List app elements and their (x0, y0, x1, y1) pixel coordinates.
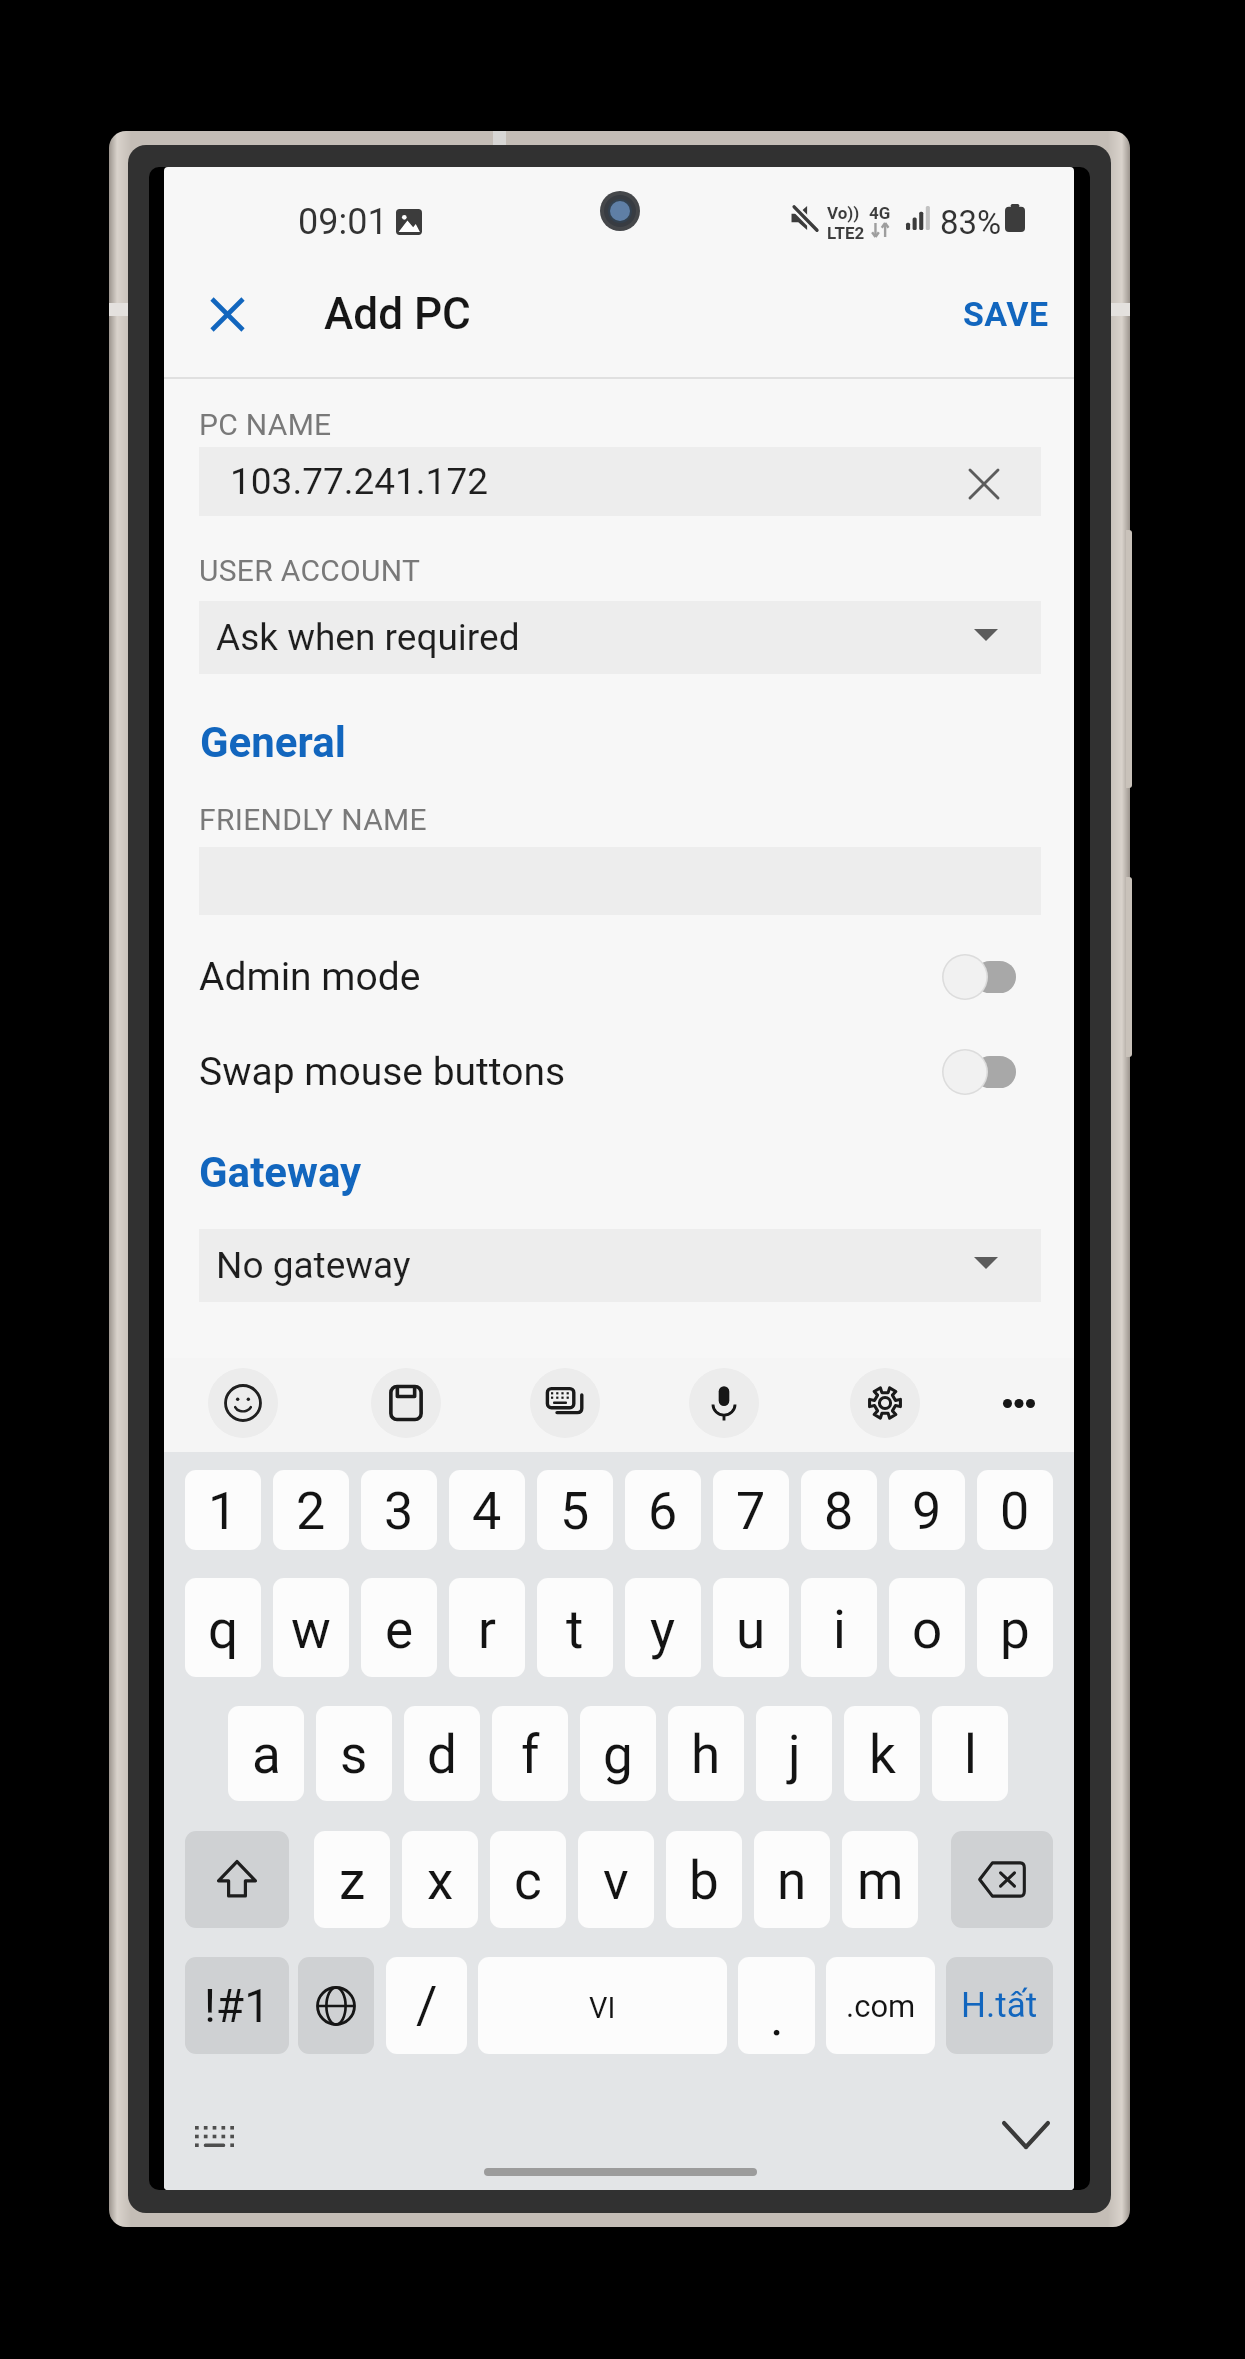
button[interactable]: j (756, 1706, 832, 1801)
button[interactable]: Swap mouse buttons (164, 1024, 1074, 1119)
button[interactable]: !#1 (185, 1957, 289, 2054)
button[interactable]: 6 (625, 1470, 701, 1550)
button[interactable]: e (361, 1578, 437, 1677)
staticText: j (788, 1724, 801, 1786)
button[interactable]: SAVE (943, 278, 1069, 350)
staticText: y (650, 1599, 676, 1661)
button[interactable]: x (402, 1831, 478, 1928)
staticText: 9 (912, 1481, 942, 1542)
staticText: !#1 (204, 1979, 271, 2033)
button[interactable]: .com (826, 1957, 935, 2054)
button[interactable]: 3 (361, 1470, 437, 1550)
staticText: m (857, 1850, 904, 1912)
button[interactable]: No gateway (199, 1229, 1041, 1302)
button[interactable]: u (713, 1578, 789, 1677)
button[interactable]: Keyboard modes (530, 1368, 600, 1438)
button[interactable]: l (932, 1706, 1008, 1801)
button[interactable]: Power (1126, 877, 1132, 1057)
button[interactable]: b (666, 1831, 742, 1928)
staticText: No gateway (216, 1244, 411, 1287)
staticText: e (385, 1599, 414, 1661)
staticText: 09:01 (298, 201, 388, 243)
button[interactable]: h (668, 1706, 744, 1801)
staticText: d (427, 1724, 457, 1786)
staticText: r (478, 1599, 496, 1661)
button[interactable]: 9 (889, 1470, 965, 1550)
button[interactable]: Backspace (951, 1831, 1053, 1928)
staticText: 3 (384, 1481, 414, 1542)
button[interactable]: r (449, 1578, 525, 1677)
staticText: 0 (1000, 1481, 1030, 1542)
staticText: FRIENDLY NAME (199, 802, 427, 837)
button[interactable]: 5 (537, 1470, 613, 1550)
button[interactable]: Close (191, 278, 263, 350)
button[interactable]: H.tất (946, 1957, 1053, 2054)
staticText: 83% (940, 203, 1002, 242)
button[interactable]: m (842, 1831, 918, 1928)
button[interactable]: VI (478, 1957, 727, 2054)
button[interactable]: k (844, 1706, 920, 1801)
button[interactable]: Clear text (953, 453, 1015, 515)
staticText: Gateway (199, 1148, 362, 1197)
button[interactable]: Shift (185, 1831, 289, 1928)
button[interactable]: o (889, 1578, 965, 1677)
staticText: t (566, 1599, 584, 1661)
button[interactable]: f (492, 1706, 568, 1801)
staticText: i (833, 1599, 846, 1661)
staticText: 2 (296, 1481, 326, 1542)
button[interactable]: c (490, 1831, 566, 1928)
button[interactable]: q (185, 1578, 261, 1677)
button[interactable]: g (580, 1706, 656, 1801)
button[interactable]: Volume (1126, 530, 1132, 788)
staticText: k (869, 1724, 896, 1786)
staticText: USER ACCOUNT (199, 553, 421, 588)
button[interactable]: Clipboard (371, 1368, 441, 1438)
button[interactable]: 2 (273, 1470, 349, 1550)
button[interactable]: v (578, 1831, 654, 1928)
button[interactable]: 103.77.241.172 (199, 447, 1041, 516)
staticText: Add PC (324, 288, 471, 340)
button[interactable]: s (316, 1706, 392, 1801)
staticText: z (339, 1850, 366, 1912)
staticText: b (689, 1850, 719, 1912)
staticText: 4G (869, 203, 891, 223)
staticText: u (736, 1599, 766, 1661)
staticText: Vo)) (827, 203, 860, 223)
button[interactable]: y (625, 1578, 701, 1677)
staticText: 1 (208, 1481, 238, 1542)
button[interactable]: d (404, 1706, 480, 1801)
button[interactable]: Ask when required (199, 601, 1041, 674)
button[interactable]: . (738, 1957, 815, 2054)
button[interactable]: Admin mode (164, 929, 1074, 1024)
staticText: 6 (648, 1481, 678, 1542)
staticText: c (514, 1850, 542, 1912)
staticText: Admin mode (199, 954, 421, 1000)
staticText: h (691, 1724, 721, 1786)
button[interactable]: p (977, 1578, 1053, 1677)
button[interactable]: Keyboard layout (184, 2108, 245, 2164)
button[interactable]: 8 (801, 1470, 877, 1550)
button[interactable]: Settings (850, 1368, 920, 1438)
button[interactable]: n (754, 1831, 830, 1928)
button[interactable]: More options (984, 1368, 1054, 1438)
button[interactable]: i (801, 1578, 877, 1677)
button[interactable]: a (228, 1706, 304, 1801)
button[interactable]: 4 (449, 1470, 525, 1550)
button[interactable]: z (314, 1831, 390, 1928)
staticText: f (521, 1724, 540, 1786)
button[interactable]: 0 (977, 1470, 1053, 1550)
button[interactable]: 1 (185, 1470, 261, 1550)
button[interactable]: Emoji (208, 1368, 278, 1438)
staticText: q (208, 1599, 239, 1661)
staticText: .com (846, 1988, 916, 2024)
staticText: Swap mouse buttons (199, 1049, 566, 1095)
staticText: . (770, 1987, 784, 2048)
button[interactable]: Hide keyboard (995, 2107, 1057, 2163)
button[interactable]: / (386, 1957, 467, 2054)
button[interactable]: t (537, 1578, 613, 1677)
button[interactable]: w (273, 1578, 349, 1677)
button[interactable]: Change language (298, 1957, 374, 2054)
button[interactable]: Voice input (689, 1368, 759, 1438)
button[interactable]: 7 (713, 1470, 789, 1550)
